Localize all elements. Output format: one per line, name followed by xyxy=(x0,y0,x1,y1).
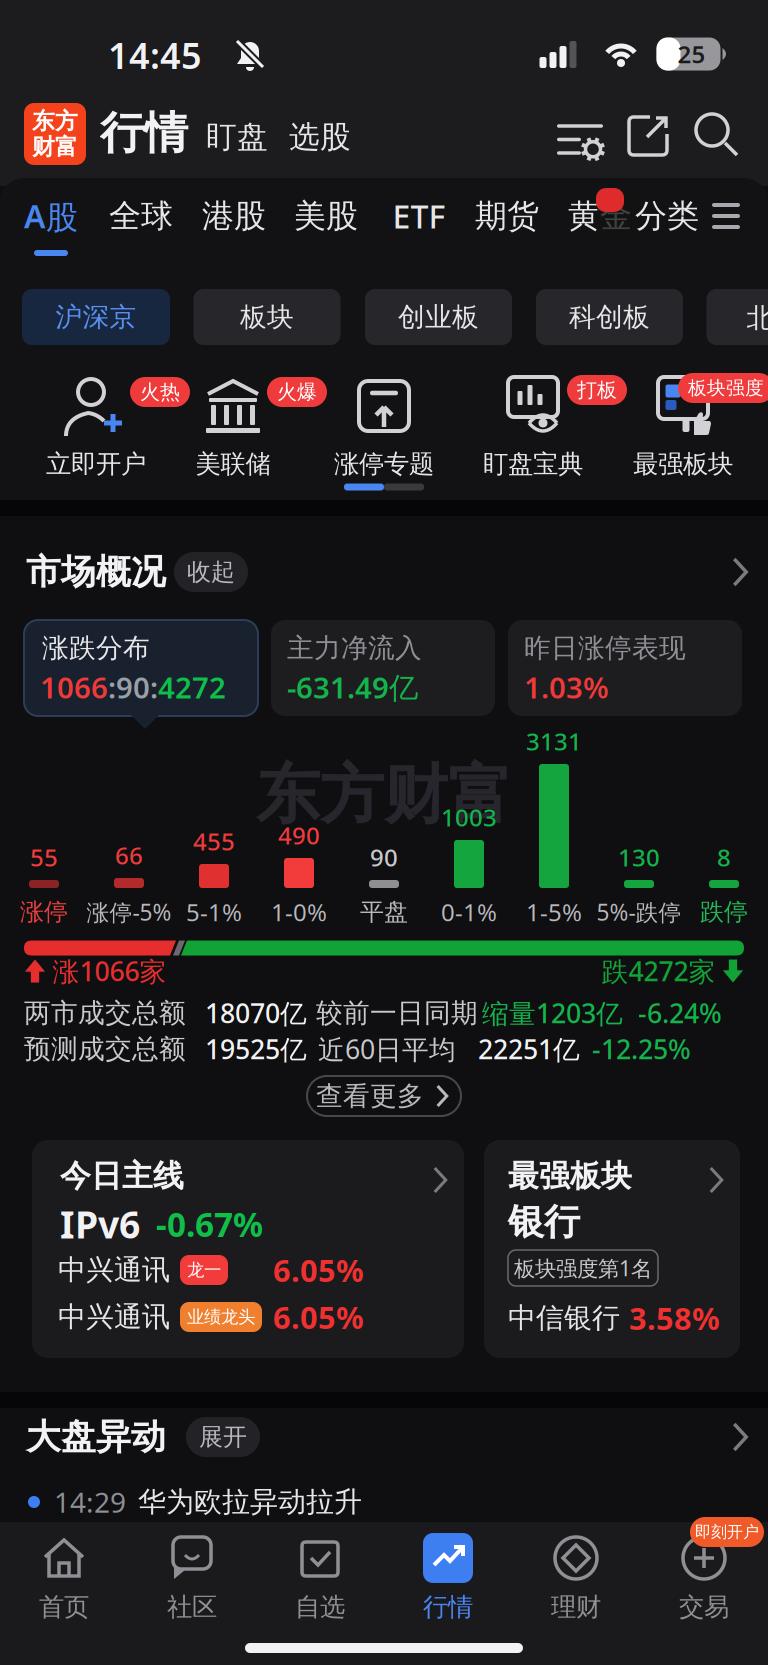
button[interactable]: 黄金 xyxy=(568,196,632,236)
staticText: 1066 xyxy=(40,667,108,706)
staticText: 8 xyxy=(717,841,731,873)
button[interactable]: 东方财富 xyxy=(24,103,86,165)
button[interactable]: 行情 xyxy=(384,1529,512,1627)
button[interactable]: 今日主线 xyxy=(32,1140,464,1358)
staticText: 90 xyxy=(370,841,398,873)
button[interactable]: 自选 xyxy=(256,1529,384,1627)
staticText: 创业板 xyxy=(398,301,479,333)
staticText: 分类 xyxy=(635,196,699,236)
staticText: 业绩龙头 xyxy=(187,1306,255,1328)
staticText: 今日主线 xyxy=(60,1157,184,1195)
button[interactable]: 昨日涨停表现 xyxy=(508,620,742,716)
staticText: 14:29 xyxy=(54,1483,126,1521)
staticText: 0-1% xyxy=(441,896,497,928)
button[interactable]: 美联储 xyxy=(159,373,307,483)
staticText: 5-1% xyxy=(186,896,242,928)
button[interactable]: 立即开户 xyxy=(22,373,170,483)
staticText: 55 xyxy=(30,841,58,873)
button[interactable]: 更多分类 xyxy=(712,203,740,229)
button[interactable]: 选股 xyxy=(289,118,351,156)
staticText: 社区 xyxy=(167,1591,217,1622)
button[interactable]: 北证50 xyxy=(706,289,768,345)
button[interactable]: 更多 xyxy=(727,559,753,585)
staticText: 科创板 xyxy=(569,301,650,333)
button[interactable]: ETF xyxy=(392,195,445,237)
button[interactable]: 期货 xyxy=(475,196,539,236)
staticText: 1-0% xyxy=(271,896,327,928)
button[interactable]: 查看更多 xyxy=(307,1076,461,1116)
staticText: 3.58% xyxy=(629,1298,720,1338)
staticText: 美股 xyxy=(294,196,358,236)
staticText: 跌4272家 xyxy=(601,953,715,989)
staticText: 两市成交总额 xyxy=(24,997,186,1029)
staticText: 打板 xyxy=(577,378,617,402)
staticText: 中兴通讯 xyxy=(58,1300,170,1334)
staticText: 立即开户 xyxy=(46,448,146,479)
staticText: -631.49亿 xyxy=(287,667,418,706)
button[interactable]: 涨跌分布 xyxy=(24,620,258,716)
button[interactable]: 搜索 xyxy=(696,114,740,158)
staticText: 最强板块 xyxy=(633,448,733,479)
staticText: 490 xyxy=(278,819,320,851)
button[interactable]: 盯盘宝典 xyxy=(459,373,607,483)
button[interactable]: 社区 xyxy=(128,1529,256,1627)
staticText: 预测成交总额 xyxy=(24,1033,186,1065)
staticText: 较前一日同期 xyxy=(316,997,478,1029)
staticText: 自选 xyxy=(295,1591,345,1622)
button[interactable]: 科创板 xyxy=(536,289,683,345)
staticText: 涨停-5% xyxy=(86,897,171,927)
button[interactable]: 理财 xyxy=(512,1529,640,1627)
staticText: 北证50 xyxy=(746,299,768,335)
staticText: 平盘 xyxy=(360,897,408,927)
staticText: 板块 xyxy=(240,301,294,333)
staticText: 板块强度第1名 xyxy=(514,1254,652,1282)
staticText: IPv6 xyxy=(60,1199,140,1249)
staticText: 即刻开户 xyxy=(695,1522,759,1542)
staticText: 19525亿 xyxy=(205,1031,307,1067)
staticText: 25 xyxy=(677,38,705,70)
staticText: 1003 xyxy=(441,801,497,833)
button[interactable]: 展开 xyxy=(186,1417,260,1457)
staticText: 涨停 xyxy=(20,897,68,927)
staticText: ETF xyxy=(392,195,445,237)
button[interactable]: 盯盘 xyxy=(206,118,268,156)
staticText: 跌停 xyxy=(700,897,748,927)
staticText: 昨日涨停表现 xyxy=(524,632,686,664)
button[interactable]: 分享 xyxy=(626,114,670,158)
button[interactable]: 交易 xyxy=(640,1529,768,1627)
button[interactable]: 涨停专题 xyxy=(310,373,458,483)
button[interactable]: 首页 xyxy=(0,1529,128,1627)
button[interactable]: 港股 xyxy=(202,196,266,236)
button[interactable]: 美股 xyxy=(294,196,358,236)
button[interactable]: 更多 xyxy=(727,1424,753,1450)
staticText: 中兴通讯 xyxy=(58,1253,170,1287)
staticText: 66 xyxy=(115,839,143,871)
button[interactable]: A股 xyxy=(24,195,78,237)
staticText: 火爆 xyxy=(277,380,317,404)
button[interactable]: 最强板块 xyxy=(484,1140,740,1358)
staticText: 最强板块 xyxy=(508,1157,632,1195)
button[interactable]: 收起 xyxy=(174,552,248,592)
staticText: 选股 xyxy=(289,118,351,156)
staticText: -12.25% xyxy=(592,1031,691,1067)
button[interactable]: 沪深京 xyxy=(22,289,170,345)
button[interactable]: 主力净流入 xyxy=(271,620,495,716)
staticText: 财富 xyxy=(32,133,78,161)
button[interactable]: 14:29 xyxy=(28,1483,748,1521)
staticText: 大盘异动 xyxy=(26,1416,166,1458)
button[interactable]: 全球 xyxy=(109,196,173,236)
staticText: 市场概况 xyxy=(26,551,166,593)
staticText: 火热 xyxy=(140,380,180,404)
staticText: 4272 xyxy=(158,667,226,706)
button[interactable]: 创业板 xyxy=(365,289,512,345)
staticText: 缩量1203亿 xyxy=(482,995,623,1031)
button[interactable]: 最强板块 xyxy=(609,373,757,483)
button[interactable]: 板块 xyxy=(193,289,340,345)
staticText: 龙一 xyxy=(187,1259,221,1281)
staticText: -6.24% xyxy=(638,995,722,1031)
staticText: 中信银行 xyxy=(508,1301,620,1335)
staticText: 黄金 xyxy=(568,196,632,236)
button[interactable]: 指标设置 xyxy=(555,112,605,160)
button[interactable]: 分类 xyxy=(635,196,699,236)
staticText: A股 xyxy=(24,195,78,237)
